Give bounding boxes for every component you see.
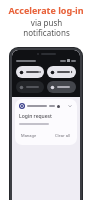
button[interactable]: Expand notification bbox=[15, 99, 77, 145]
button[interactable]: Quick setting tile bbox=[47, 66, 76, 78]
button[interactable]: Manage bbox=[19, 132, 39, 139]
staticText: Login request bbox=[19, 113, 52, 120]
staticText: via push notifications bbox=[23, 17, 70, 38]
staticText: Clear all bbox=[55, 133, 71, 138]
button[interactable]: Quick setting tile bbox=[16, 66, 44, 78]
button[interactable]: Quick setting tile bbox=[16, 81, 44, 93]
button[interactable]: Quick setting tile bbox=[47, 81, 76, 93]
button[interactable]: Expand notification bbox=[67, 103, 73, 109]
staticText: Manage bbox=[21, 133, 37, 138]
button[interactable]: Clear all bbox=[53, 132, 73, 139]
staticText: Accelerate log-in bbox=[8, 4, 84, 16]
